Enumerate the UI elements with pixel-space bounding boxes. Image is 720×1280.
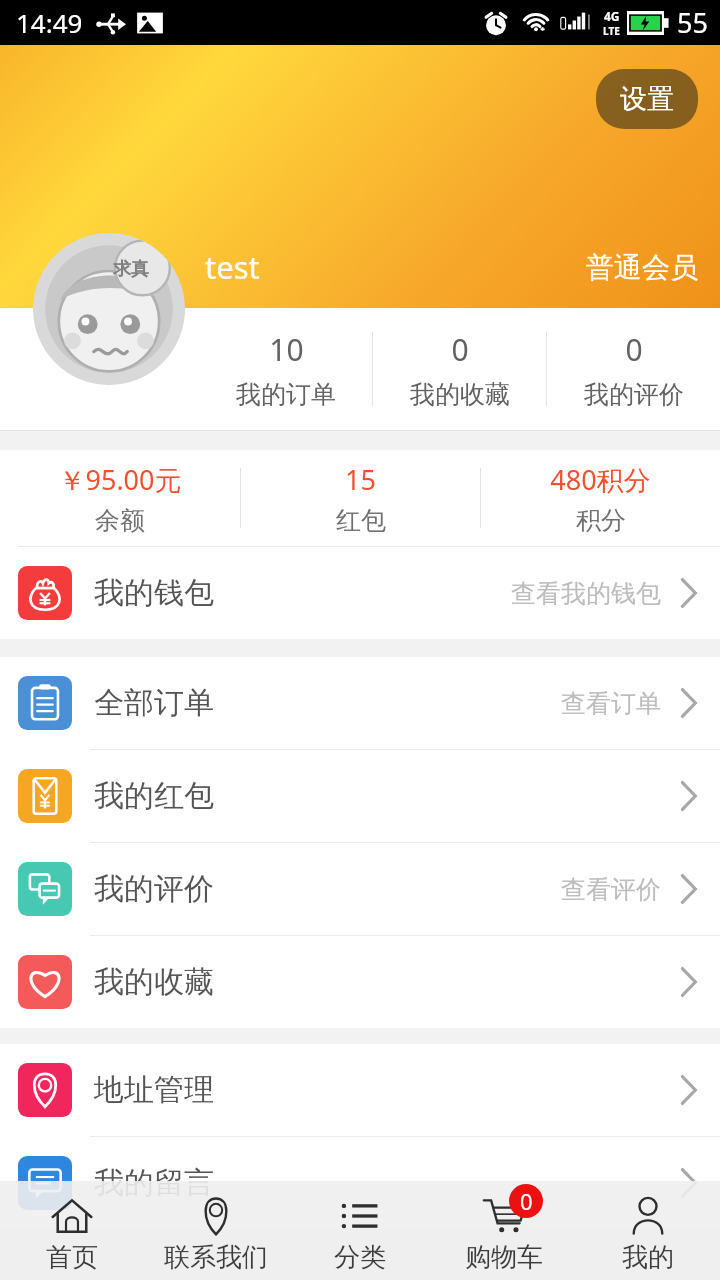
staticText: 14:49 [16, 5, 83, 40]
staticText: 联系我们 [164, 1241, 268, 1274]
button[interactable]: 我的红包 [0, 750, 720, 842]
staticText: 我的留言 [94, 1164, 214, 1202]
staticText: 设置 [620, 82, 674, 116]
staticText: 15 [345, 461, 376, 498]
staticText: 分类 [334, 1241, 386, 1274]
button[interactable]: 我的留言 [0, 1137, 720, 1229]
button[interactable]: Profile avatar [33, 233, 185, 385]
staticText: 购物车 [465, 1241, 543, 1274]
button[interactable]: 全部订单 [0, 657, 720, 749]
button[interactable]: 我的钱包 [0, 547, 720, 639]
staticText: LTE [603, 24, 620, 38]
button[interactable]: 480积分 [481, 450, 720, 546]
staticText: 求真 [113, 258, 149, 281]
staticText: 我的红包 [94, 777, 214, 815]
staticText: 55 [677, 4, 708, 41]
staticText: 4G [604, 8, 620, 24]
button[interactable]: 我的收藏 [0, 936, 720, 1028]
button[interactable]: ￥95.00元 [0, 450, 240, 546]
staticText: 我的 [622, 1241, 674, 1274]
staticText: 首页 [46, 1241, 98, 1274]
staticText: 积分 [576, 505, 626, 536]
staticText: 全部订单 [94, 684, 214, 722]
staticText: 红包 [336, 505, 386, 536]
staticText: 我的收藏 [410, 379, 510, 410]
staticText: 0 [520, 1186, 533, 1216]
staticText: 地址管理 [94, 1071, 214, 1109]
button[interactable]: 0 [373, 308, 546, 430]
staticText: 我的评价 [584, 379, 684, 410]
staticText: 0 [625, 329, 643, 370]
button[interactable]: 10 [200, 308, 372, 430]
staticText: 查看订单 [561, 688, 661, 719]
button[interactable]: 我的 [576, 1181, 720, 1280]
button[interactable]: 设置 [596, 69, 698, 129]
staticText: 480积分 [550, 461, 651, 498]
button[interactable]: 0 [432, 1181, 576, 1280]
staticText: ￥95.00元 [58, 461, 182, 498]
staticText: 0 [451, 329, 469, 370]
staticText: 查看我的钱包 [511, 578, 661, 609]
staticText: 我的收藏 [94, 963, 214, 1001]
staticText: 我的评价 [94, 870, 214, 908]
staticText: 查看评价 [561, 874, 661, 905]
staticText: 我的订单 [236, 379, 336, 410]
button[interactable]: 联系我们 [144, 1181, 288, 1280]
button[interactable]: 首页 [0, 1181, 144, 1280]
button[interactable]: 0 [547, 308, 720, 430]
staticText: 余额 [95, 505, 145, 536]
staticText: 我的钱包 [94, 574, 214, 612]
button[interactable]: 地址管理 [0, 1044, 720, 1136]
button[interactable]: 分类 [288, 1181, 432, 1280]
staticText: test [205, 246, 260, 288]
button[interactable]: 15 [241, 450, 480, 546]
button[interactable]: 我的评价 [0, 843, 720, 935]
staticText: 普通会员 [586, 250, 698, 285]
staticText: 10 [269, 329, 304, 370]
